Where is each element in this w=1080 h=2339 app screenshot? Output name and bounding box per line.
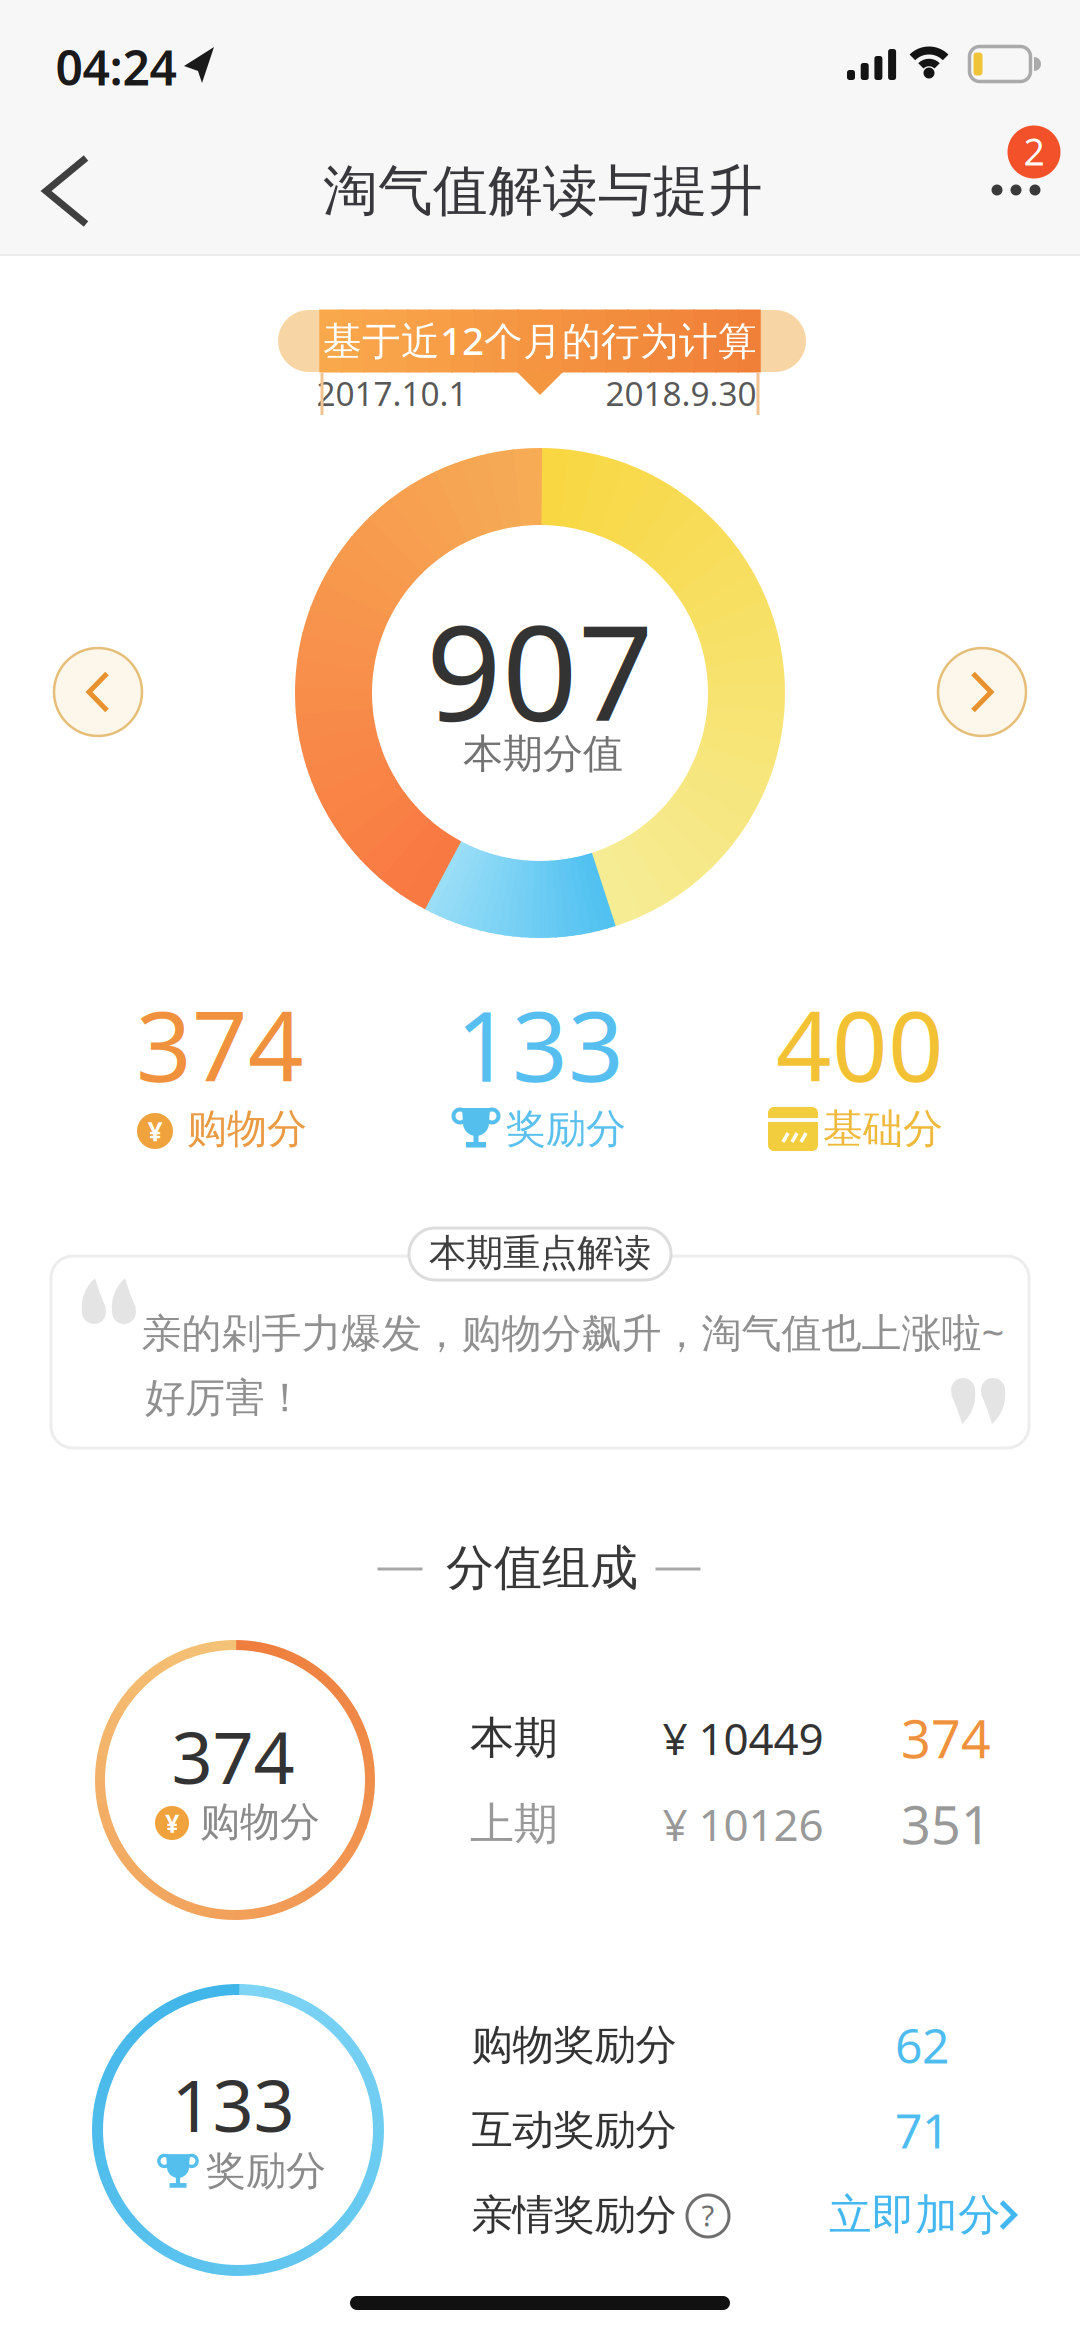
staticText: 133 — [171, 2056, 294, 2152]
button[interactable]: Back — [7, 131, 117, 251]
staticText: 奖励分 — [506, 1104, 626, 1153]
staticText: 04:24 — [55, 35, 176, 99]
staticText: 购物分 — [187, 1104, 307, 1153]
staticText: ¥ — [147, 1113, 162, 1149]
staticText: 基于近12个月的行为计算 — [323, 314, 757, 366]
staticText: 133 — [456, 979, 624, 1109]
staticText: ¥ — [165, 1806, 179, 1840]
button[interactable]: Previous period — [53, 647, 143, 737]
staticText: 上期 — [470, 1797, 558, 1851]
staticText: 好厉害！ — [145, 1373, 305, 1422]
staticText: 分值组成 — [446, 1538, 638, 1597]
staticText: 2 — [1023, 126, 1044, 176]
button[interactable]: 立即加分 — [835, 2190, 1025, 2240]
staticText: ? — [701, 2195, 714, 2234]
staticText: 互动奖励分 — [471, 2105, 676, 2155]
staticText: 62 — [895, 2013, 949, 2077]
button[interactable]: About family bonus points — [683, 2191, 733, 2241]
staticText: 351 — [901, 1789, 991, 1859]
staticText: 购物奖励分 — [471, 2020, 676, 2070]
staticText: 2017.10.1 — [316, 371, 467, 415]
staticText: 374 — [171, 1708, 294, 1804]
staticText: 淘气值解读与提升 — [323, 157, 763, 224]
staticText: 基础分 — [823, 1104, 943, 1153]
staticText: 374 — [136, 979, 304, 1109]
staticText: 907 — [426, 582, 654, 758]
staticText: 本期 — [470, 1711, 558, 1765]
staticText: 立即加分 — [829, 2189, 1001, 2241]
button[interactable]: More — [940, 120, 1060, 250]
button[interactable]: Next period — [937, 647, 1027, 737]
staticText: 本期重点解读 — [429, 1230, 651, 1276]
staticText: 374 — [901, 1703, 991, 1773]
staticText: 亲情奖励分 — [471, 2190, 676, 2240]
staticText: 71 — [895, 2098, 949, 2162]
staticText: 奖励分 — [206, 2146, 326, 2195]
staticText: ¥ 10126 — [662, 1795, 823, 1853]
staticText: 本期分值 — [463, 729, 623, 778]
staticText: 400 — [776, 979, 944, 1109]
staticText: 亲的剁手力爆发，购物分飙升，淘气值也上涨啦~ — [141, 1305, 1004, 1358]
staticText: 2018.9.30 — [605, 371, 756, 415]
staticText: 购物分 — [200, 1797, 320, 1846]
staticText: ¥ 10449 — [662, 1709, 823, 1767]
